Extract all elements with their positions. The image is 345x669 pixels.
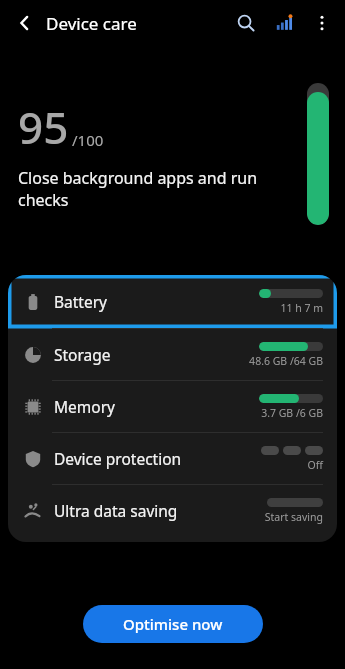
staticText: 48.6 GB /64 GB: [249, 354, 323, 368]
button[interactable]: Memory: [8, 381, 337, 432]
staticText: Optimise now: [123, 614, 223, 634]
button[interactable]: Optimise now: [83, 605, 263, 643]
button[interactable]: Back: [8, 6, 42, 40]
button[interactable]: More options: [303, 4, 341, 42]
staticText: Battery: [54, 291, 108, 312]
staticText: Device protection: [54, 448, 182, 469]
staticText: Ultra data saving: [54, 500, 178, 521]
button[interactable]: Usage statistics: [265, 4, 303, 42]
staticText: 3.7 GB /6 GB: [261, 406, 323, 420]
staticText: /100: [72, 130, 104, 150]
staticText: Memory: [54, 396, 115, 417]
button[interactable]: Device protection: [8, 433, 337, 484]
staticText: Off: [307, 458, 323, 472]
staticText: Close background apps and run checks: [18, 167, 275, 211]
button[interactable]: Ultra data saving: [8, 485, 337, 536]
staticText: 95: [18, 97, 69, 157]
staticText: 11 h 7 m: [280, 301, 323, 315]
button[interactable]: Battery: [8, 275, 337, 328]
staticText: Device care: [46, 12, 137, 35]
button[interactable]: Search: [227, 4, 265, 42]
staticText: Start saving: [264, 510, 323, 524]
button[interactable]: Storage: [8, 329, 337, 380]
staticText: Storage: [54, 344, 111, 365]
